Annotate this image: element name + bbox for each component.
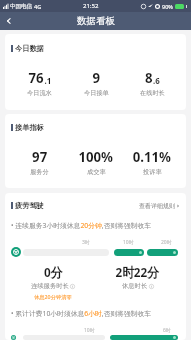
staticText: 8 <box>145 67 153 87</box>
staticText: .1 <box>44 74 51 86</box>
staticText: 90% <box>162 3 173 10</box>
staticText: 4G <box>34 3 42 10</box>
staticText: 0分 <box>44 263 63 281</box>
staticText: 2时22分 <box>115 263 159 281</box>
staticText: 今日数据 <box>15 44 44 53</box>
staticText: 查看详细规则 <box>139 202 175 210</box>
staticText: 10时 <box>84 327 95 333</box>
staticText: 连续服务时长 <box>31 282 69 290</box>
staticText: 100% <box>78 146 114 166</box>
staticText: .6 <box>153 74 160 86</box>
staticText: 成交率 <box>87 168 106 176</box>
staticText: 疲劳驾驶 <box>15 201 44 210</box>
staticText: 6时 <box>163 327 171 333</box>
button[interactable]: 查看详细规则 <box>139 202 180 210</box>
staticText: 3时 <box>82 239 90 245</box>
staticText: 97 <box>32 146 48 166</box>
staticText: 今日接单 <box>84 89 109 97</box>
staticText: 休息时长 <box>122 282 148 290</box>
staticText: 投诉率 <box>143 168 162 176</box>
staticText: 20时 <box>161 239 172 245</box>
staticText: 服务分 <box>30 168 49 176</box>
staticText: 中国电信 <box>10 3 32 10</box>
staticText: 76 <box>29 67 44 87</box>
staticText: 9 <box>92 67 100 87</box>
staticText: 10时 <box>123 239 134 245</box>
staticText: 接单指标 <box>15 123 44 132</box>
staticText: 21:52 <box>83 2 99 10</box>
staticText: 数据看板 <box>77 15 115 27</box>
staticText: 休息20分钟清零 <box>34 293 72 300</box>
staticText: 在线时长 <box>140 89 165 97</box>
staticText: 今日流水 <box>27 89 52 97</box>
staticText: • 连续服务3小时须休息20分钟,否则将强制收车 <box>11 221 152 230</box>
staticText: • 累计计费10小时须休息6小时,否则将强制收车 <box>11 309 152 318</box>
staticText: 0.11% <box>133 146 171 166</box>
button[interactable]: Back <box>2 14 16 28</box>
